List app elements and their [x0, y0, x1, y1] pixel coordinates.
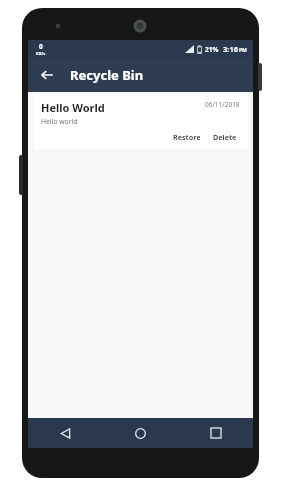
staticText: PM	[239, 47, 247, 54]
staticText: Recycle Bin	[70, 66, 144, 84]
button[interactable]: Recent apps	[178, 418, 253, 448]
staticText: 3:16	[223, 44, 238, 54]
button[interactable]: Restore	[170, 130, 204, 144]
button[interactable]: Back	[28, 418, 103, 448]
staticText: Restore	[173, 132, 201, 142]
button[interactable]: Delete	[210, 130, 240, 144]
staticText: 0	[39, 42, 43, 51]
button[interactable]: Home	[103, 418, 178, 448]
button[interactable]: Back	[34, 62, 60, 88]
staticText: 21%	[205, 45, 219, 54]
staticText: KB/s	[36, 51, 46, 57]
staticText: Delete	[213, 132, 237, 142]
staticText: Hello World	[41, 100, 105, 115]
staticText: 06/11/2018	[205, 100, 240, 109]
staticText: Hello world	[41, 117, 78, 126]
button[interactable]: Hello World	[33, 93, 248, 149]
